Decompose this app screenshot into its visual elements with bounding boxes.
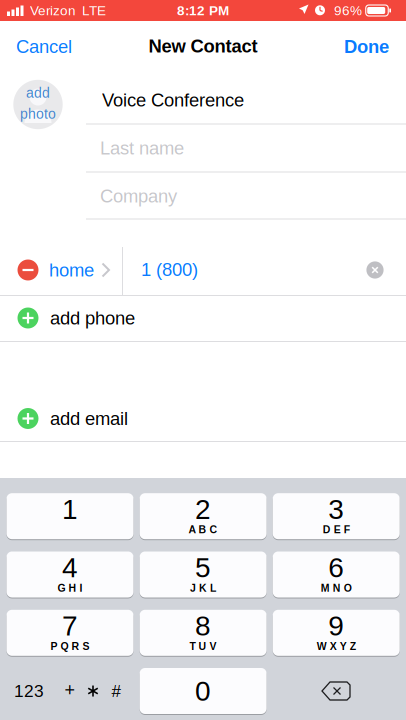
staticText: add email: [50, 408, 128, 429]
staticText: J K L: [190, 582, 216, 594]
button[interactable]: Last name: [0, 0, 406, 720]
button[interactable]: 2: [0, 0, 406, 720]
staticText: Done: [344, 36, 389, 57]
staticText: A B C: [189, 524, 218, 535]
button[interactable]: +*#: [0, 0, 406, 720]
staticText: Verizon: [30, 3, 76, 18]
staticText: W X Y Z: [317, 640, 356, 652]
staticText: LTE: [82, 3, 106, 18]
staticText: G H I: [57, 582, 82, 594]
staticText: 4: [62, 552, 78, 583]
button[interactable]: 123: [0, 0, 406, 720]
button[interactable]: 5: [0, 0, 406, 720]
button[interactable]: 9: [0, 0, 406, 720]
staticText: Cancel: [16, 36, 72, 57]
button[interactable]: add photo: [0, 0, 406, 720]
staticText: add phone: [50, 308, 135, 328]
staticText: 96%: [334, 3, 362, 18]
button[interactable]: Clear text: [0, 0, 406, 720]
button[interactable]: 8: [0, 0, 406, 720]
button[interactable]: 3: [0, 0, 406, 720]
staticText: 123: [14, 681, 44, 701]
staticText: P Q R S: [50, 640, 89, 652]
staticText: photo: [20, 106, 56, 122]
button[interactable]: 1: [0, 0, 406, 720]
button[interactable]: 0: [0, 0, 406, 720]
staticText: home: [49, 260, 94, 280]
staticText: T U V: [190, 640, 217, 652]
button[interactable]: Phone number: [0, 0, 406, 720]
staticText: 0: [195, 675, 211, 707]
staticText: +: [64, 680, 75, 700]
staticText: 8:12 PM: [177, 3, 229, 18]
staticText: Company: [100, 186, 177, 206]
button[interactable]: Remove phone: [0, 0, 406, 720]
staticText: 5: [195, 552, 211, 583]
staticText: 2: [195, 494, 211, 525]
button[interactable]: 7: [0, 0, 406, 720]
staticText: 1 (800): [141, 259, 198, 280]
button[interactable]: add email: [0, 0, 406, 720]
staticText: #: [111, 681, 120, 700]
button[interactable]: Company: [0, 0, 406, 720]
button[interactable]: add phone: [0, 0, 406, 720]
staticText: Voice Conference: [102, 90, 244, 110]
staticText: 3: [328, 494, 344, 525]
staticText: M N O: [321, 582, 352, 594]
button[interactable]: 6: [0, 0, 406, 720]
button[interactable]: 4: [0, 0, 406, 720]
button[interactable]: Cancel: [0, 0, 406, 720]
button[interactable]: First name: [0, 0, 406, 720]
button[interactable]: Done: [0, 0, 406, 720]
staticText: 8: [195, 610, 211, 641]
staticText: 9: [328, 610, 344, 641]
staticText: Last name: [100, 138, 184, 158]
staticText: New Contact: [148, 36, 257, 56]
button[interactable]: Delete: [0, 0, 406, 720]
button[interactable]: home label: [0, 0, 406, 720]
staticText: D E F: [323, 524, 350, 535]
staticText: 1: [62, 494, 78, 525]
staticText: 7: [62, 610, 78, 641]
staticText: add: [26, 85, 50, 101]
staticText: 6: [328, 552, 344, 583]
